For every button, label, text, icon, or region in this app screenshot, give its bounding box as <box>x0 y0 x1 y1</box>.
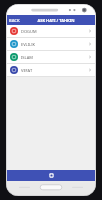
button[interactable]: VEFAT <box>7 64 95 76</box>
button[interactable]: Menu <box>7 170 95 181</box>
staticText: ASK HATI / TAHKIN <box>37 18 75 23</box>
button[interactable]: BACK <box>9 15 20 25</box>
staticText: EVLILIK <box>21 42 88 47</box>
button[interactable]: DOGUM <box>7 25 95 37</box>
staticText: BACK <box>9 18 20 23</box>
staticText: DOGUM <box>21 29 88 34</box>
staticText: VEFAT <box>21 68 88 73</box>
staticText: ISLAM <box>21 55 88 60</box>
button[interactable]: ISLAM <box>7 51 95 63</box>
button[interactable]: EVLILIK <box>7 38 95 50</box>
